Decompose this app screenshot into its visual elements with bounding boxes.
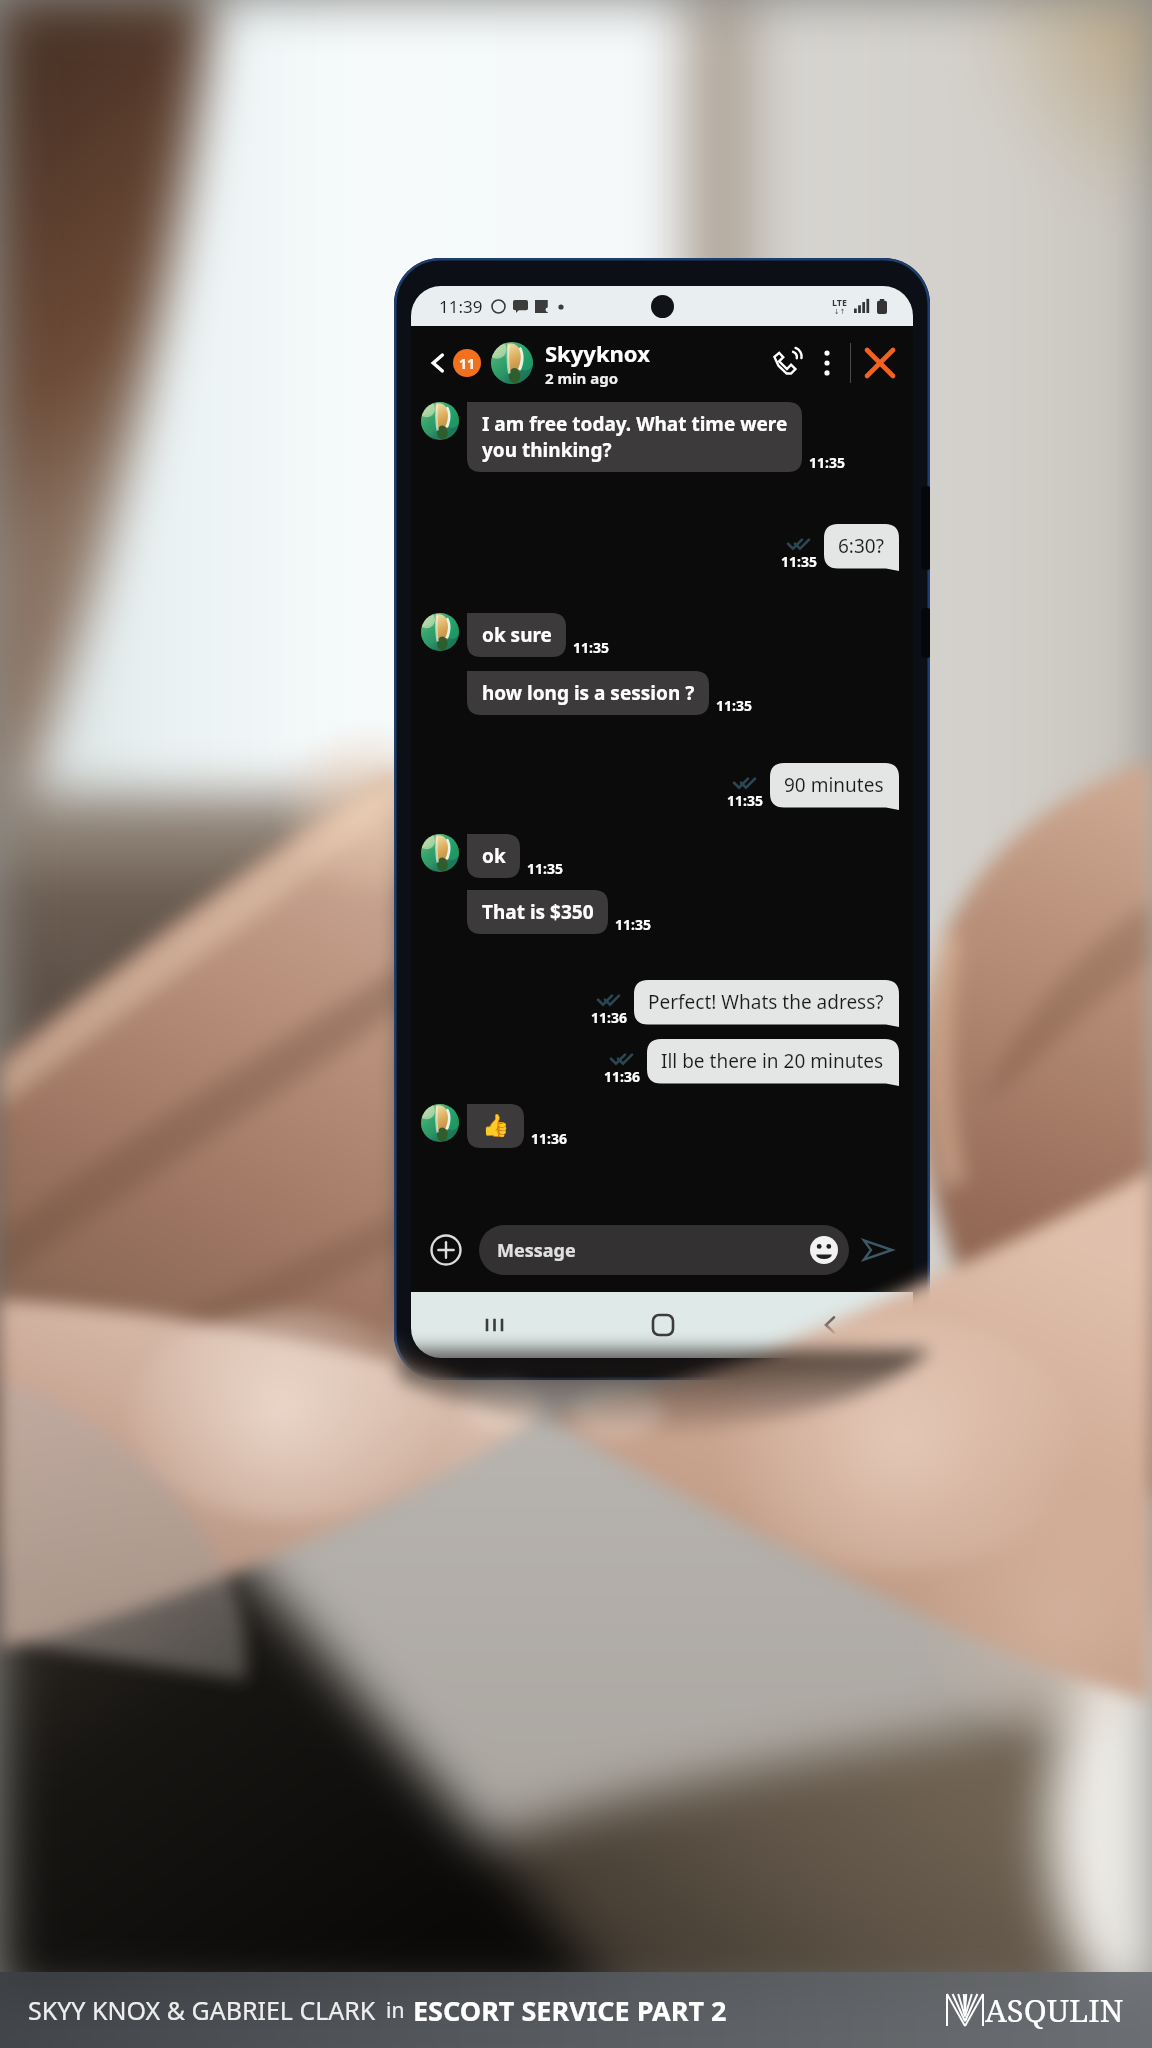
button[interactable]: That is $350: [467, 890, 608, 934]
button[interactable]: 90 minutes: [770, 763, 899, 810]
staticText: 11:35: [809, 453, 845, 472]
staticText: 11:35: [615, 915, 651, 934]
button[interactable]: Back: [746, 1292, 913, 1358]
staticText: in: [386, 1996, 405, 2025]
staticText: 11:35: [573, 638, 609, 657]
button[interactable]: Add attachment: [425, 1229, 467, 1271]
staticText: 90 minutes: [784, 772, 884, 798]
button[interactable]: ok sure: [467, 613, 566, 657]
staticText: Perfect! Whats the adress?: [648, 989, 884, 1015]
button[interactable]: More options: [810, 346, 844, 380]
staticText: 11:36: [604, 1067, 640, 1086]
button[interactable]: Recents: [411, 1292, 579, 1358]
button[interactable]: Call: [766, 341, 810, 385]
staticText: 2 min ago: [545, 368, 619, 388]
staticText: 6:30?: [838, 533, 884, 559]
button[interactable]: Close: [859, 342, 901, 384]
staticText: ok sure: [482, 622, 552, 648]
button[interactable]: 6:30?: [824, 524, 899, 571]
staticText: Skyyknox: [545, 338, 650, 368]
staticText: ok: [482, 843, 506, 869]
staticText: 11:35: [727, 791, 763, 810]
button[interactable]: how long is a session ?: [467, 671, 709, 715]
staticText: 11:35: [527, 859, 563, 878]
button[interactable]: 👍: [467, 1104, 524, 1148]
staticText: SKYY KNOX & GABRIEL CLARK: [28, 1993, 376, 2027]
staticText: LTE: [832, 296, 848, 308]
button[interactable]: Perfect! Whats the adress?: [634, 980, 899, 1027]
staticText: ASQULIN: [985, 1989, 1124, 2031]
staticText: Ill be there in 20 minutes: [661, 1048, 884, 1074]
staticText: 11:35: [716, 696, 752, 715]
button[interactable]: Message: [479, 1225, 849, 1275]
button[interactable]: Send: [857, 1229, 899, 1271]
staticText: 11:36: [591, 1008, 627, 1027]
staticText: I am free today. What time were you thin…: [482, 411, 788, 463]
button[interactable]: I am free today. What time were you thin…: [467, 402, 802, 472]
button[interactable]: Home: [579, 1292, 746, 1358]
staticText: ↓↑: [834, 308, 846, 316]
button[interactable]: Back: [425, 350, 451, 376]
button[interactable]: Ill be there in 20 minutes: [647, 1039, 899, 1086]
staticText: 👍: [482, 1113, 510, 1139]
staticText: 11: [459, 354, 476, 373]
staticText: 11:35: [781, 552, 817, 571]
staticText: Message: [497, 1238, 576, 1263]
staticText: how long is a session ?: [482, 680, 695, 706]
staticText: 11:36: [531, 1129, 567, 1148]
button[interactable]: ok: [467, 834, 520, 878]
staticText: ESCORT SERVICE PART 2: [413, 1992, 727, 2029]
staticText: 11:39: [439, 295, 483, 318]
staticText: That is $350: [482, 899, 594, 925]
